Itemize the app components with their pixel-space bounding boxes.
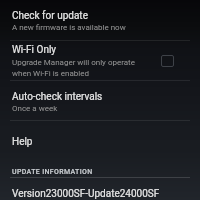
staticText: Auto-check intervals [12,91,103,103]
button[interactable]: Auto-check intervals [0,81,200,121]
staticText: A new firmware is available now [12,23,126,32]
staticText: Version23000SF-Update24000SF [12,188,160,200]
button[interactable]: Wi-Fi Only [0,41,200,81]
button[interactable]: Help [0,121,200,160]
staticText: Once a week [12,104,58,113]
staticText: Wi-Fi Only [12,44,57,56]
staticText: UPDATE INFORMATION [12,168,93,176]
staticText: Check for update [12,10,88,22]
staticText: Upgrade Manager will only operate when W… [12,58,135,78]
staticText: Help [12,136,33,148]
button[interactable]: Check for update [0,0,200,41]
